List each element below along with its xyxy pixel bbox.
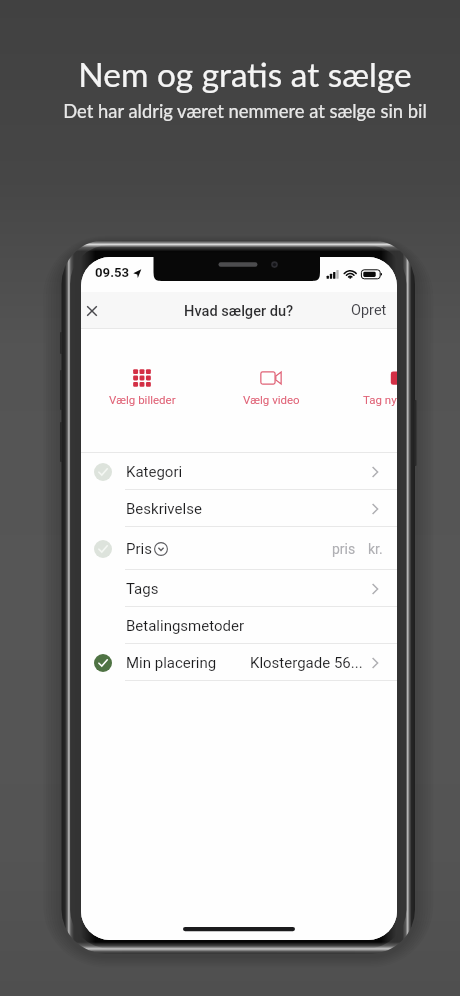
staticText: Kategori (126, 463, 183, 481)
button[interactable]: Tag nyt billede (352, 353, 397, 413)
staticText: Betalingsmetoder (126, 617, 245, 635)
staticText: Tag nyt billede (363, 393, 397, 406)
staticText: Min placering (126, 654, 217, 672)
staticText: Det har aldrig været nemmere at sælge si… (15, 100, 460, 122)
staticText: Vælg video (243, 393, 300, 406)
staticText: Klostergade 56... (250, 654, 363, 672)
staticText: Hvad sælger du? (184, 302, 294, 319)
staticText: Opret (351, 302, 387, 319)
button[interactable]: Vælg video (223, 353, 319, 413)
button[interactable]: Vælg billeder (94, 353, 190, 413)
staticText: Pris (126, 540, 152, 558)
button[interactable]: Min placering (81, 644, 397, 681)
button[interactable]: Beskrivelse (81, 490, 397, 527)
button[interactable]: Tags (81, 570, 397, 607)
button[interactable]: Pris (81, 527, 397, 570)
button[interactable]: Luk (81, 296, 107, 326)
staticText: 09.53 (95, 265, 130, 280)
staticText: Beskrivelse (126, 500, 202, 518)
button[interactable]: Opret (341, 294, 397, 327)
staticText: pris (332, 541, 356, 557)
staticText: Nem og gratis at sælge (15, 54, 460, 94)
staticText: kr. (368, 541, 383, 557)
button[interactable]: Kategori (81, 453, 397, 490)
staticText: Vælg billeder (109, 393, 176, 406)
staticText: Tags (126, 580, 159, 598)
button[interactable]: Betalingsmetoder (81, 607, 397, 644)
